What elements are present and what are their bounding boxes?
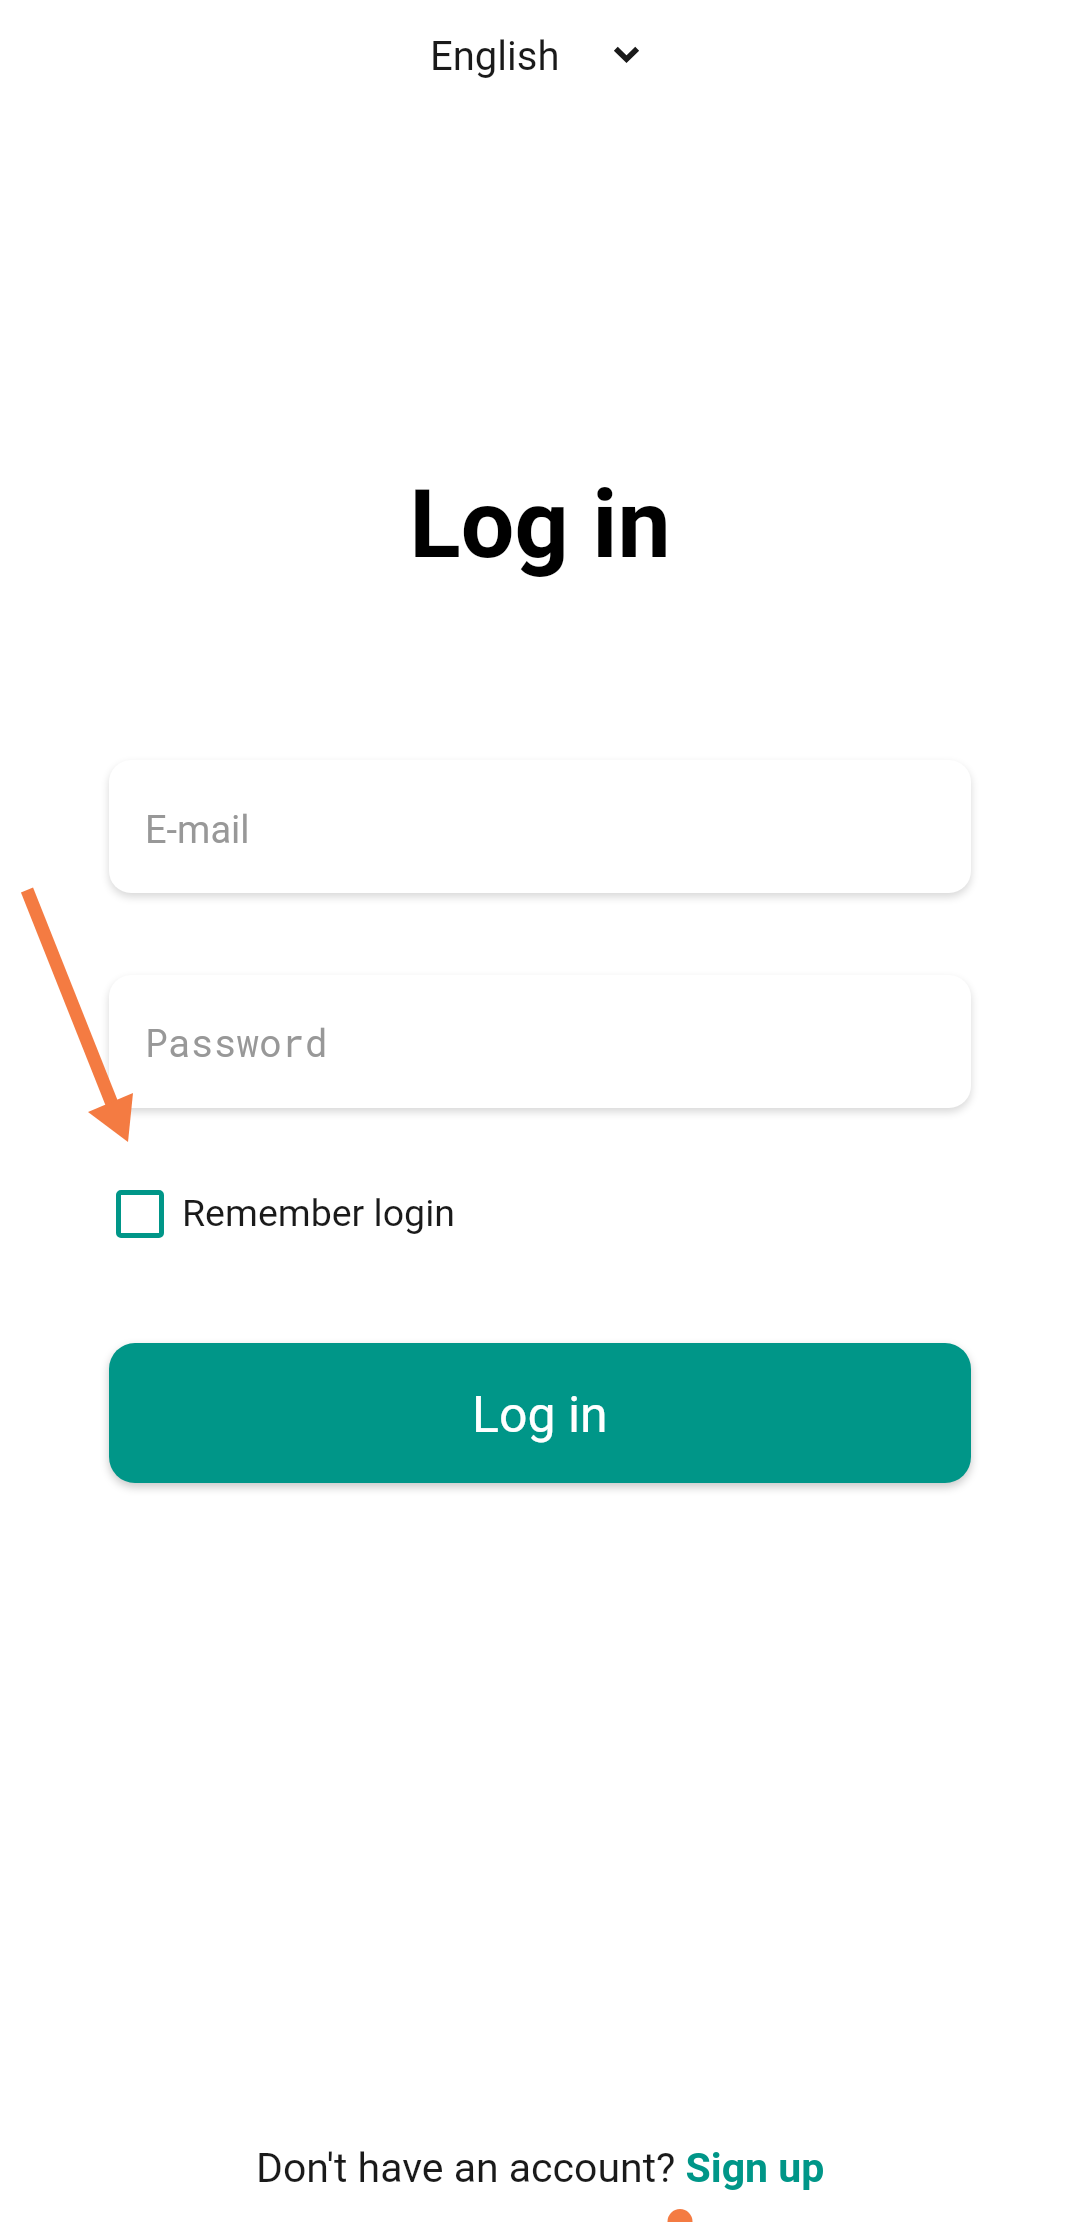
staticText: E-mail xyxy=(145,808,250,853)
button[interactable]: Password xyxy=(109,975,971,1108)
staticText: Log in xyxy=(472,1386,608,1445)
staticText: Remember login xyxy=(182,1191,455,1235)
staticText: Password xyxy=(145,1017,328,1067)
button[interactable]: Remember login xyxy=(104,1182,467,1246)
button[interactable]: Don't have an account? Sign up xyxy=(246,2140,835,2196)
other: Change language xyxy=(613,46,640,62)
staticText: Log in xyxy=(0,469,1080,580)
button[interactable]: Log in xyxy=(109,1343,971,1483)
staticText: Don't have an account? Sign up xyxy=(256,2144,825,2192)
button[interactable]: E-mail xyxy=(109,760,971,893)
button[interactable]: English xyxy=(414,21,656,92)
staticText: English xyxy=(430,33,560,80)
